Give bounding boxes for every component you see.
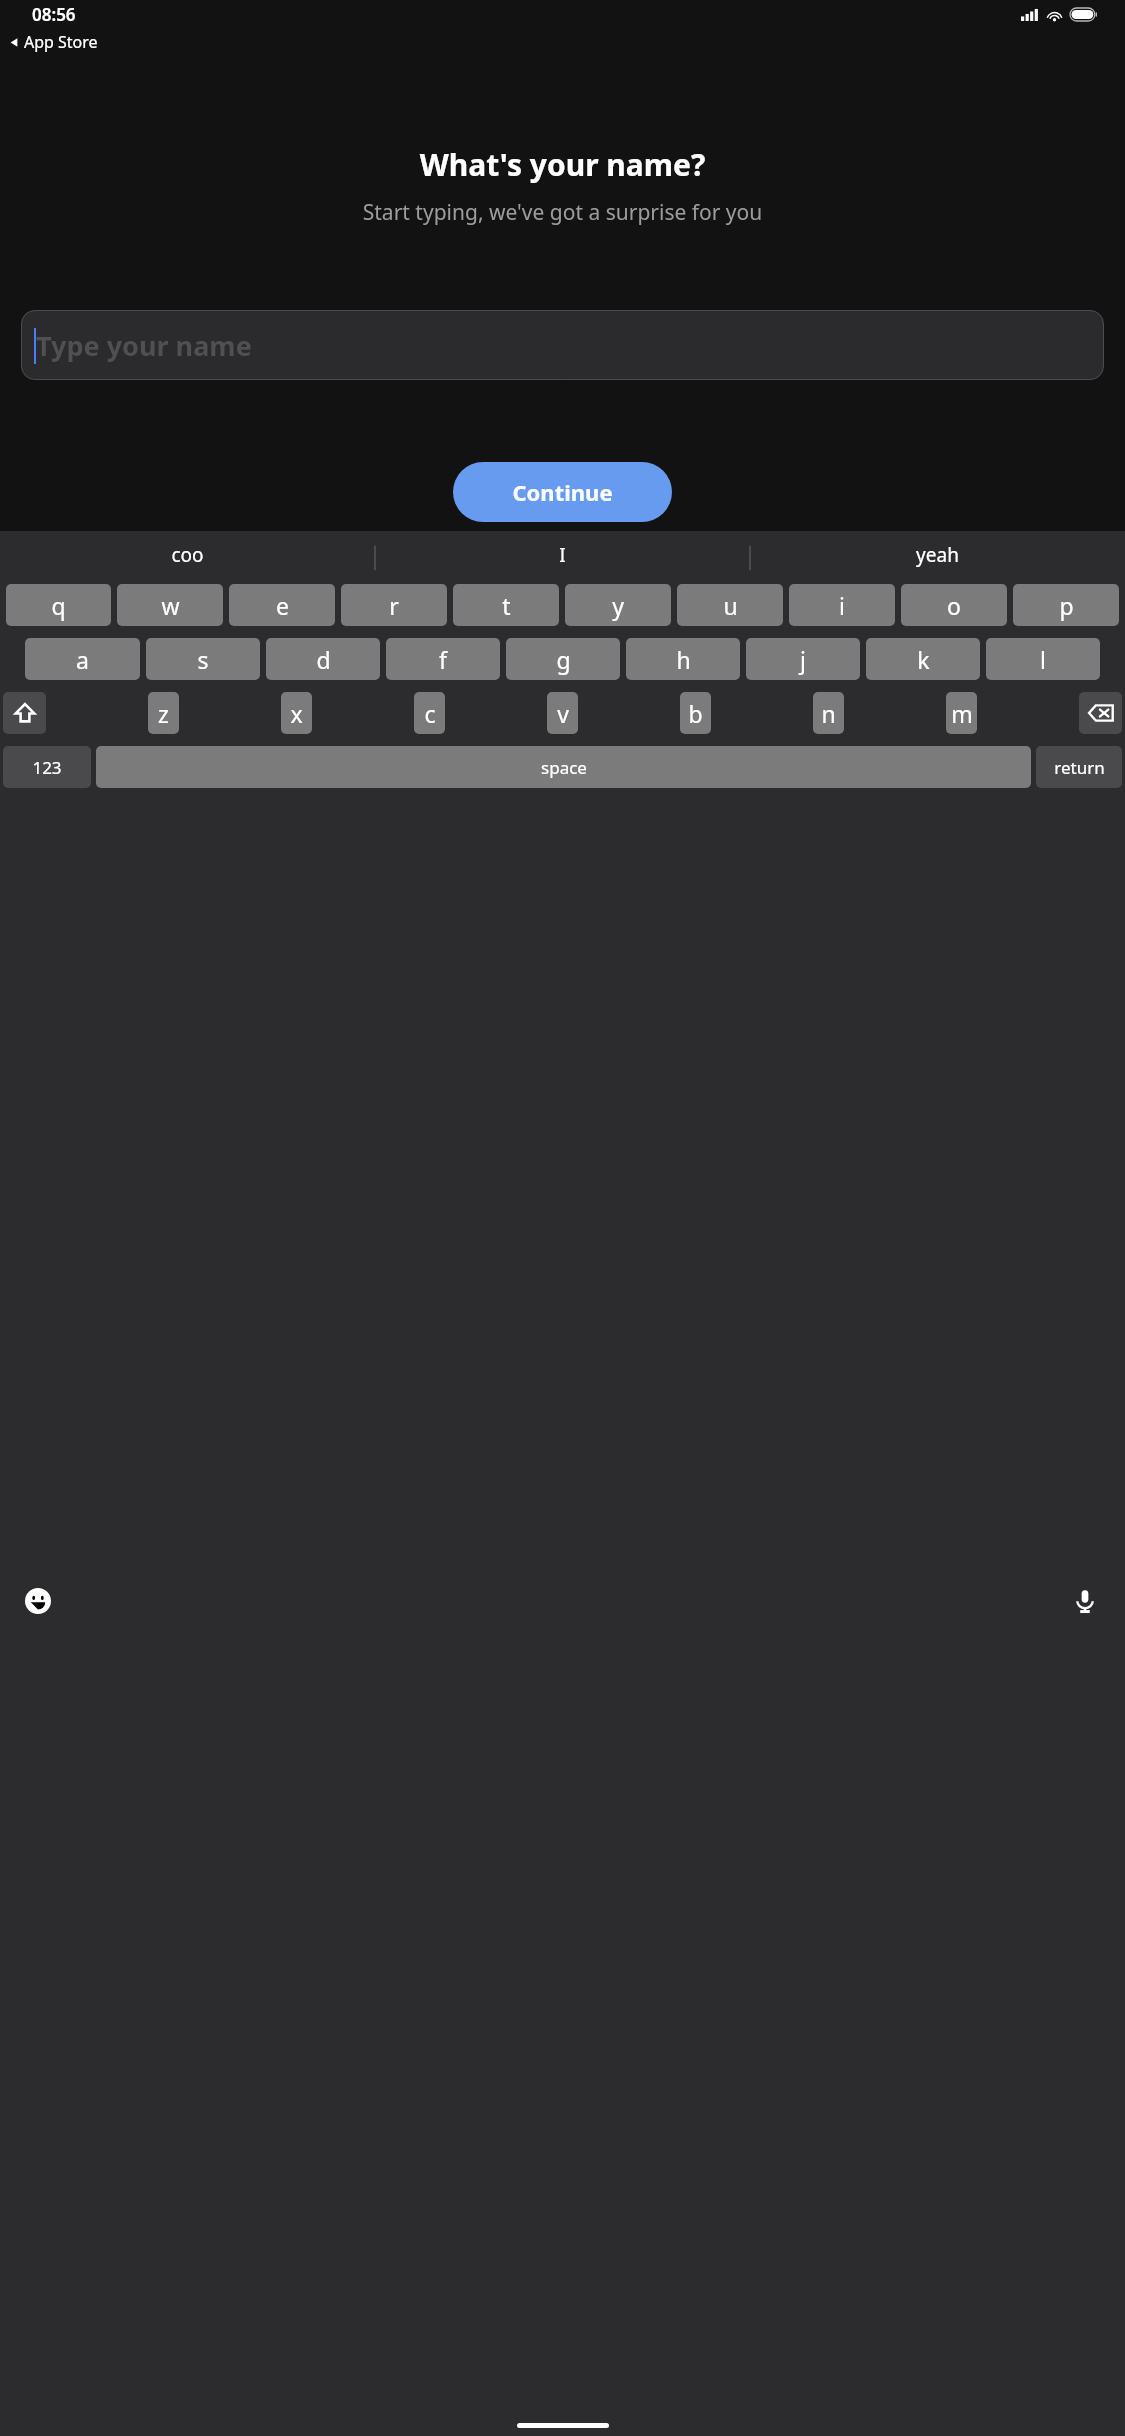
staticText: s	[197, 644, 209, 675]
button[interactable]: Emoji keyboard	[18, 1581, 58, 1621]
staticText: What's your name?	[0, 144, 1125, 185]
button[interactable]: l	[986, 638, 1100, 680]
button[interactable]: u	[677, 584, 783, 626]
button[interactable]: z	[148, 692, 179, 734]
button[interactable]: g	[506, 638, 620, 680]
staticText: y	[612, 590, 624, 621]
staticText: Start typing, we've got a surprise for y…	[0, 198, 1125, 227]
staticText: i	[839, 590, 845, 621]
staticText: t	[502, 590, 511, 621]
staticText: 08:56	[32, 3, 76, 26]
button[interactable]: Continue	[453, 462, 672, 522]
staticText: return	[1054, 756, 1105, 779]
staticText: d	[316, 644, 331, 675]
staticText: m	[951, 698, 973, 729]
staticText: z	[158, 698, 169, 729]
staticText: r	[389, 590, 399, 621]
button[interactable]: yeah	[750, 531, 1125, 579]
button[interactable]: n	[813, 692, 844, 734]
button[interactable]: return	[1036, 746, 1122, 788]
staticText: f	[439, 644, 447, 675]
staticText: n	[821, 698, 836, 729]
button[interactable]: j	[746, 638, 860, 680]
button[interactable]: h	[626, 638, 740, 680]
button[interactable]: b	[680, 692, 711, 734]
staticText: Type your name	[36, 327, 252, 364]
button[interactable]: m	[946, 692, 977, 734]
staticText: w	[161, 590, 180, 621]
button[interactable]: Type your name	[21, 310, 1104, 380]
button[interactable]: q	[6, 584, 111, 626]
staticText: q	[51, 590, 66, 621]
staticText: c	[424, 698, 436, 729]
button[interactable]: Shift	[3, 692, 46, 734]
staticText: k	[917, 644, 930, 675]
button[interactable]: 123	[3, 746, 91, 788]
staticText: x	[290, 698, 303, 729]
button[interactable]: e	[229, 584, 335, 626]
button[interactable]: f	[386, 638, 500, 680]
button[interactable]: y	[565, 584, 671, 626]
staticText: Continue	[512, 477, 613, 507]
staticText: u	[723, 590, 738, 621]
staticText: o	[947, 590, 961, 621]
staticText: App Store	[24, 31, 98, 53]
button[interactable]: p	[1013, 584, 1119, 626]
staticText: j	[800, 644, 806, 675]
button[interactable]: t	[453, 584, 559, 626]
button[interactable]: Backspace	[1079, 692, 1122, 734]
staticText: v	[557, 698, 569, 729]
button[interactable]: v	[547, 692, 578, 734]
staticText: 123	[32, 756, 62, 779]
button[interactable]: i	[789, 584, 895, 626]
button[interactable]: w	[117, 584, 223, 626]
button[interactable]: k	[866, 638, 980, 680]
button[interactable]: a	[25, 638, 140, 680]
staticText: coo	[171, 542, 204, 568]
staticText: a	[76, 644, 89, 675]
staticText: space	[541, 756, 587, 779]
button[interactable]: I	[375, 531, 750, 579]
staticText: p	[1059, 590, 1074, 621]
button[interactable]: c	[414, 692, 445, 734]
button[interactable]: r	[341, 584, 447, 626]
staticText: g	[556, 644, 571, 675]
button[interactable]: coo	[0, 531, 375, 579]
staticText: b	[688, 698, 703, 729]
button[interactable]: App Store	[8, 29, 98, 55]
staticText: I	[559, 542, 566, 568]
button[interactable]: Dictation	[1065, 1581, 1105, 1621]
staticText: h	[676, 644, 691, 675]
staticText: yeah	[916, 542, 959, 568]
button[interactable]: space	[96, 746, 1031, 788]
button[interactable]: x	[281, 692, 312, 734]
staticText: l	[1040, 644, 1046, 675]
staticText: e	[276, 590, 289, 621]
button[interactable]: d	[266, 638, 380, 680]
button[interactable]: o	[901, 584, 1007, 626]
button[interactable]: s	[146, 638, 260, 680]
